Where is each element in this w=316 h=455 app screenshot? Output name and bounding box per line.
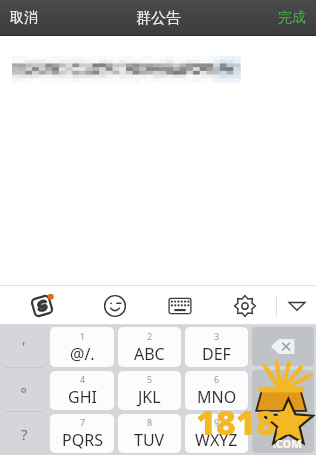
staticText: WXYZ: [195, 429, 238, 451]
staticText: 2: [147, 330, 153, 342]
staticText: 5: [147, 373, 153, 385]
button[interactable]: Keyboard layout: [146, 286, 214, 325]
button[interactable]: 9: [185, 414, 248, 453]
button[interactable]: Emoji: [84, 286, 146, 325]
staticText: 群公告: [136, 9, 181, 28]
button[interactable]: Sogou input method: [0, 286, 84, 325]
button[interactable]: Hide keyboard: [277, 286, 316, 325]
button[interactable]: 6: [185, 371, 248, 410]
staticText: ∘: [19, 381, 29, 398]
button[interactable]: 完成: [268, 0, 316, 36]
staticText: 7: [80, 416, 86, 428]
button[interactable]: Settings: [214, 286, 276, 325]
staticText: 6: [214, 373, 220, 385]
staticText: 3: [214, 330, 220, 342]
staticText: ': [22, 336, 26, 356]
staticText: MNO: [197, 386, 237, 408]
staticText: 18183: [196, 399, 296, 445]
button[interactable]: 2: [118, 327, 181, 367]
staticText: ABC: [134, 343, 165, 365]
button[interactable]: ': [0, 325, 48, 367]
staticText: ?: [21, 424, 28, 444]
button[interactable]: 5: [118, 371, 181, 410]
staticText: .COM: [273, 436, 302, 451]
staticText: 完成: [278, 9, 306, 27]
staticText: 1: [80, 330, 86, 342]
staticText: 9: [214, 416, 220, 428]
staticText: PQRS: [62, 429, 103, 451]
button[interactable]: 7: [50, 414, 114, 453]
staticText: JKL: [138, 386, 161, 408]
button[interactable]: 8: [118, 414, 181, 453]
button[interactable]: Backspace: [252, 327, 314, 366]
button[interactable]: 1: [50, 327, 114, 367]
button[interactable]: ?: [0, 412, 48, 455]
staticText: @/.: [70, 343, 95, 365]
staticText: 取消: [10, 9, 38, 27]
button[interactable]: 取消: [0, 0, 48, 36]
staticText: 4: [80, 373, 86, 385]
staticText: TUV: [134, 429, 165, 451]
button[interactable]: Enter: [252, 370, 314, 453]
staticText: GHI: [68, 386, 97, 408]
button[interactable]: 3: [185, 327, 248, 367]
button[interactable]: ∘: [0, 368, 48, 411]
button[interactable]: 4: [50, 371, 114, 410]
staticText: 8: [147, 416, 153, 428]
staticText: DEF: [202, 343, 231, 365]
